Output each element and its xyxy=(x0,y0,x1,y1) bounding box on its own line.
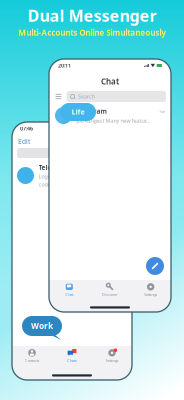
button[interactable]: Settings xyxy=(92,348,132,364)
staticText: Life xyxy=(71,108,84,116)
staticText: Telegram xyxy=(76,107,106,116)
staticText: Login xyxy=(38,173,51,180)
staticText: code xyxy=(38,181,50,188)
staticText: Chat xyxy=(101,76,119,87)
staticText: Chats xyxy=(67,358,77,363)
staticText: Settings xyxy=(105,358,118,363)
staticText: Dual Messenger xyxy=(27,5,156,26)
button[interactable]: Edit xyxy=(12,135,132,148)
button[interactable]: Contacts xyxy=(12,348,52,364)
staticText: Work xyxy=(31,321,53,331)
staticText: Telegram xyxy=(38,163,68,172)
button[interactable]: Discover xyxy=(90,282,130,298)
staticText: 20:11 xyxy=(58,62,71,69)
staticText: 07:46 xyxy=(20,125,33,132)
button[interactable]: Search xyxy=(66,91,166,102)
staticText: Contacts xyxy=(24,358,39,363)
staticText: Settings xyxy=(144,292,157,297)
button[interactable]: Chat xyxy=(49,282,90,298)
button[interactable]: Telegram xyxy=(12,158,132,188)
staticText: Job A Digest Many new featur… xyxy=(76,117,149,124)
button[interactable]: Telegram xyxy=(49,104,171,127)
button[interactable]: Chats xyxy=(52,348,92,364)
staticText: Search xyxy=(78,93,95,100)
button[interactable]: Settings xyxy=(130,282,171,298)
staticText: Discover xyxy=(102,292,118,297)
staticText: Multi-Accounts Online Simultaneously xyxy=(18,27,166,38)
staticText: Tue xyxy=(159,109,165,114)
button[interactable]: Compose xyxy=(146,257,164,275)
button[interactable]: Menu xyxy=(55,93,62,100)
staticText: Edit xyxy=(18,137,30,146)
staticText: Chat xyxy=(65,292,73,297)
